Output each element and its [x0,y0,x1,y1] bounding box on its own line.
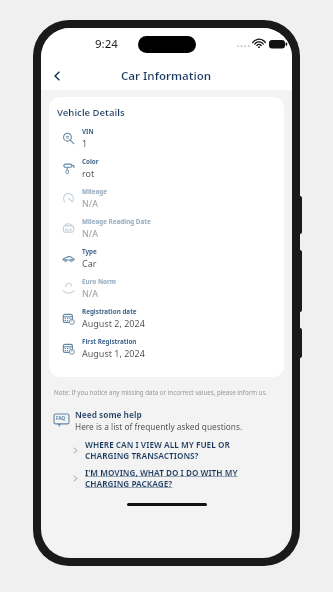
staticText: N/A [82,287,98,299]
button[interactable]: Mileage [57,187,284,209]
staticText: Mileage Reading Date [82,217,151,226]
staticText: August 2, 2024 [82,317,145,329]
staticText: VIN [82,127,94,136]
staticText: Color [82,157,99,166]
staticText: N/A [82,227,98,239]
button[interactable]: VIN [57,127,284,149]
staticText: Type [82,247,97,256]
staticText: N/A [82,197,98,209]
staticText: rot [82,167,95,179]
staticText: First Registration [82,337,137,346]
staticText: Need some help [75,409,142,420]
button[interactable]: Back [45,64,69,88]
staticText: 1 [82,137,88,149]
staticText: Note: If you notice any missing data or … [54,388,268,396]
staticText: I'M MOVING, WHAT DO I DO WITH MY CHARGIN… [85,467,238,489]
button[interactable]: I'M MOVING, WHAT DO I DO WITH MY CHARGIN… [71,467,284,489]
staticText: Registration date [82,307,137,316]
button[interactable]: Mileage Reading Date [57,217,284,239]
button[interactable]: Registration date [57,307,284,329]
button[interactable]: Euro Norm [57,277,284,299]
staticText: Car Information [121,68,212,84]
staticText: WHERE CAN I VIEW ALL MY FUEL OR CHARGING… [85,439,230,461]
staticText: Here is a list of frequently asked quest… [75,421,243,432]
staticText: Euro Norm [82,277,116,286]
staticText: Vehicle Details [57,106,125,119]
staticText: 9:24 [95,36,118,52]
staticText: FAQ [56,415,66,421]
button[interactable]: Color [57,157,284,179]
staticText: Car [82,257,97,269]
button[interactable]: WHERE CAN I VIEW ALL MY FUEL OR CHARGING… [71,439,284,461]
button[interactable]: First Registration [57,337,284,359]
staticText: August 1, 2024 [82,347,145,359]
staticText: Mileage [82,187,107,196]
button[interactable]: Type [57,247,284,269]
